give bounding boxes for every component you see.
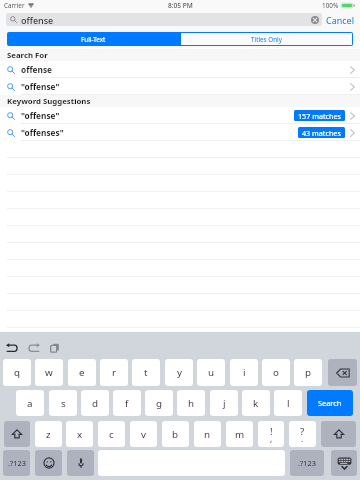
staticText: x: [77, 428, 83, 441]
button[interactable]: ?: [289, 421, 316, 447]
staticText: a: [27, 397, 33, 410]
staticText: u: [208, 366, 215, 379]
staticText: Cancel: [326, 14, 355, 26]
button[interactable]: o: [262, 359, 290, 386]
button[interactable]: Shift: [321, 421, 356, 447]
button[interactable]: Undo: [5, 341, 19, 354]
button[interactable]: c: [98, 421, 125, 447]
staticText: .: [301, 433, 304, 445]
staticText: .?123: [8, 458, 26, 468]
button[interactable]: .?123: [3, 450, 30, 476]
button[interactable]: h: [177, 390, 205, 416]
button[interactable]: .?123: [290, 450, 324, 476]
button[interactable]: Clear text: [311, 16, 319, 24]
staticText: g: [156, 397, 163, 410]
staticText: v: [141, 428, 146, 441]
staticText: Keyword Suggestions: [7, 96, 91, 107]
staticText: q: [14, 366, 21, 379]
staticText: l: [287, 397, 290, 410]
button[interactable]: i: [230, 359, 258, 386]
staticText: .?123: [298, 458, 316, 468]
button[interactable]: j: [210, 390, 238, 416]
button[interactable]: s: [49, 390, 77, 416]
staticText: offense: [21, 14, 54, 26]
staticText: 157 matches: [298, 111, 341, 121]
button[interactable]: Emoji: [35, 450, 62, 476]
button[interactable]: Shift: [4, 421, 30, 447]
button[interactable]: b: [162, 421, 189, 447]
button[interactable]: q: [3, 359, 31, 386]
button[interactable]: w: [35, 359, 63, 386]
button[interactable]: Full-Text: [7, 32, 180, 46]
button[interactable]: k: [242, 390, 270, 416]
button[interactable]: d: [81, 390, 109, 416]
staticText: e: [79, 366, 85, 379]
button[interactable]: Hide keyboard: [331, 450, 357, 476]
staticText: k: [253, 397, 259, 410]
button[interactable]: Redo: [27, 341, 41, 354]
button[interactable]: x: [66, 421, 93, 447]
staticText: !: [270, 425, 273, 438]
staticText: Search: [318, 398, 342, 408]
staticText: f: [125, 397, 129, 410]
staticText: Search For: [7, 50, 48, 61]
button[interactable]: Backspace: [328, 359, 357, 386]
staticText: c: [109, 428, 114, 441]
staticText: ?: [300, 425, 305, 438]
staticText: d: [92, 397, 99, 410]
button[interactable]: l: [274, 390, 302, 416]
button[interactable]: "offense": [0, 78, 360, 95]
staticText: m: [235, 428, 245, 441]
staticText: "offense": [21, 81, 60, 92]
button[interactable]: n: [194, 421, 221, 447]
button[interactable]: Search: [307, 390, 353, 416]
staticText: r: [112, 366, 117, 379]
staticText: offense: [21, 64, 53, 75]
button[interactable]: Dictation: [67, 450, 94, 476]
staticText: s: [61, 397, 66, 410]
button[interactable]: r: [100, 359, 128, 386]
staticText: o: [273, 366, 279, 379]
button[interactable]: v: [130, 421, 157, 447]
button[interactable]: p: [294, 359, 322, 386]
button[interactable]: f: [113, 390, 141, 416]
button[interactable]: e: [68, 359, 96, 386]
button[interactable]: !: [258, 421, 284, 447]
button[interactable]: offense: [6, 13, 322, 26]
staticText: "offense": [21, 110, 60, 121]
staticText: y: [177, 366, 182, 379]
staticText: 43 matches: [302, 128, 341, 138]
staticText: Carrier: [4, 1, 25, 10]
staticText: Full-Text: [81, 35, 106, 44]
button[interactable]: offense: [0, 61, 360, 78]
button[interactable]: Cancel: [326, 14, 355, 26]
staticText: i: [243, 366, 246, 379]
button[interactable]: Titles Only: [181, 33, 352, 45]
staticText: 8:05 PM: [168, 1, 193, 10]
staticText: w: [45, 366, 53, 379]
button[interactable]: u: [197, 359, 225, 386]
button[interactable]: m: [226, 421, 253, 447]
staticText: 100%: [322, 1, 339, 10]
button[interactable]: "offenses": [0, 124, 360, 141]
staticText: t: [144, 366, 148, 379]
staticText: z: [46, 428, 51, 441]
button[interactable]: Paste: [49, 341, 61, 354]
staticText: b: [172, 428, 179, 441]
button[interactable]: a: [16, 390, 44, 416]
button[interactable]: g: [145, 390, 173, 416]
staticText: p: [305, 366, 312, 379]
staticText: j: [223, 397, 226, 410]
staticText: ,: [270, 433, 273, 445]
button[interactable]: "offense": [0, 107, 360, 124]
button[interactable]: t: [132, 359, 160, 386]
staticText: h: [188, 397, 195, 410]
button[interactable]: z: [35, 421, 62, 447]
staticText: n: [204, 428, 211, 441]
staticText: "offenses": [21, 127, 64, 138]
button[interactable]: y: [165, 359, 193, 386]
staticText: Titles Only: [251, 35, 282, 44]
